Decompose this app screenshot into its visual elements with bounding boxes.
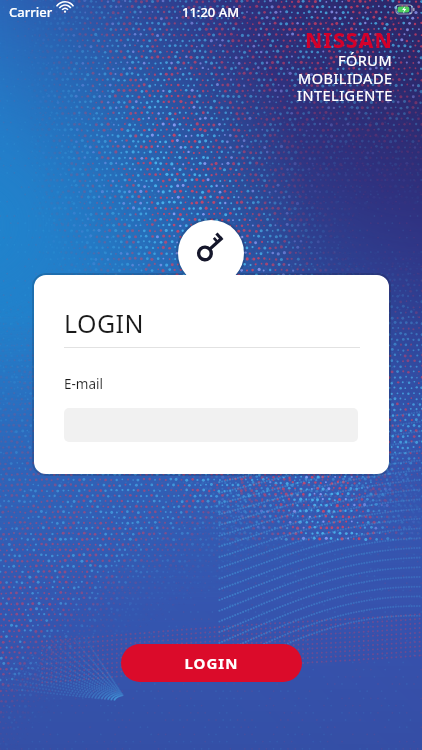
button[interactable]: Login key — [178, 220, 244, 286]
button[interactable]: LOGIN — [121, 644, 302, 682]
